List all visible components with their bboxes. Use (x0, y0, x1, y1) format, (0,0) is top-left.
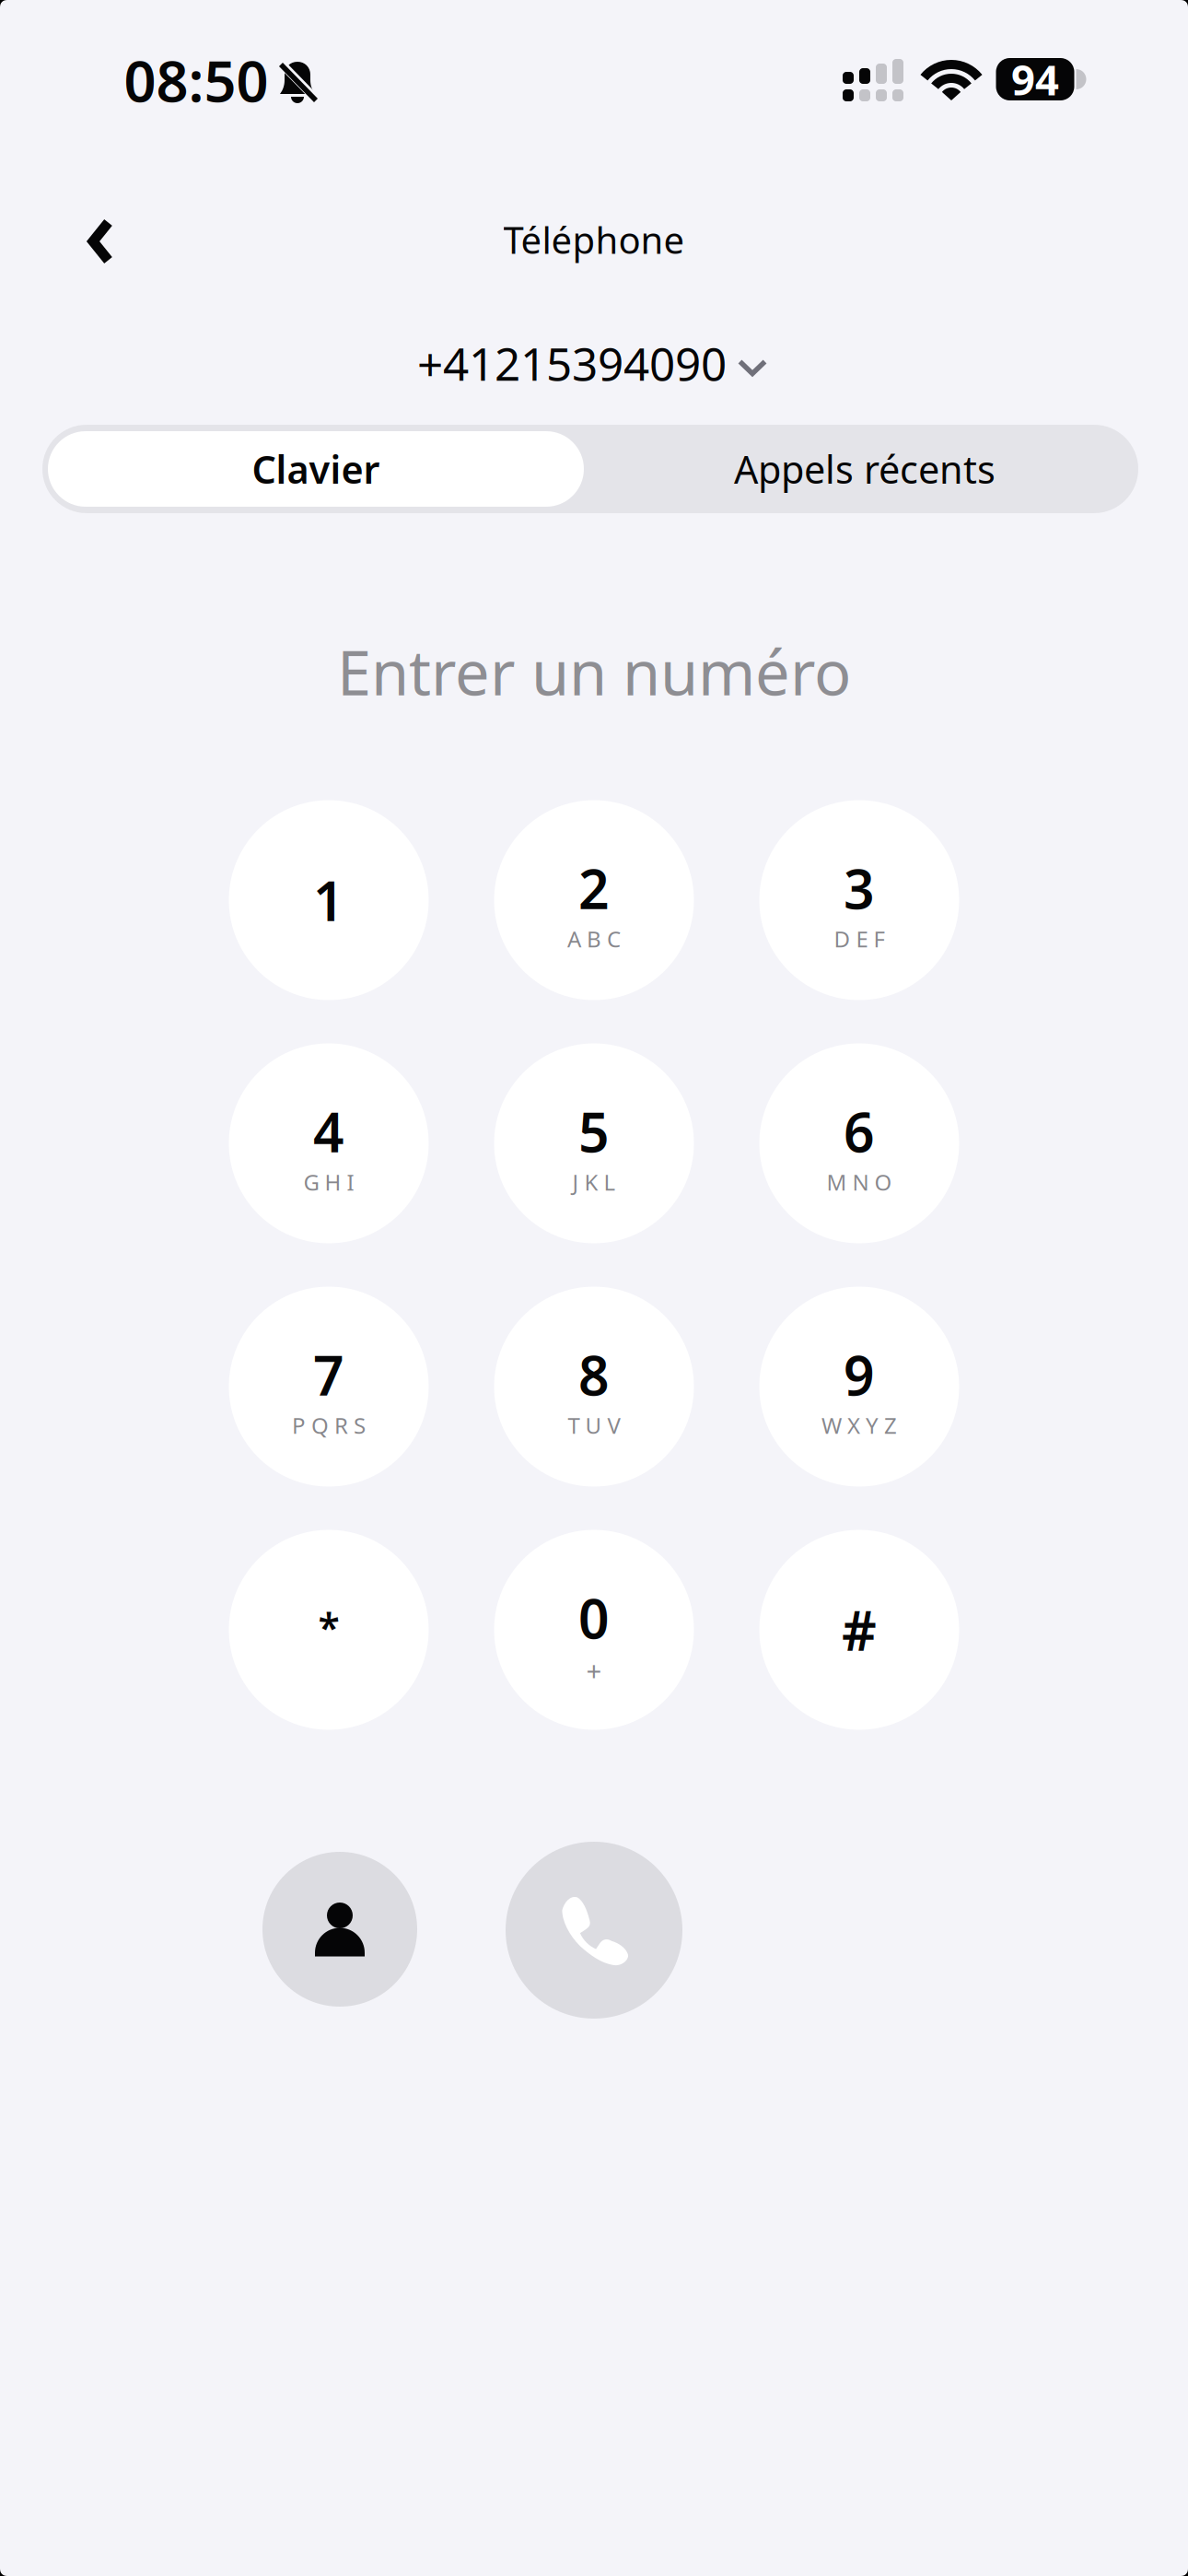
staticText: M N O (827, 1167, 892, 1197)
staticText: D E F (834, 924, 885, 954)
button[interactable]: Clavier (48, 431, 584, 507)
button[interactable]: 3 (759, 800, 959, 1000)
button[interactable]: Back (56, 197, 145, 286)
button[interactable]: # (759, 1530, 959, 1730)
button[interactable]: Contacts (262, 1852, 417, 2007)
button[interactable]: * (229, 1530, 429, 1730)
button[interactable]: 5 (494, 1043, 694, 1243)
staticText: 94 (1011, 52, 1059, 107)
staticText: 9 (844, 1339, 875, 1410)
staticText: 5 (578, 1095, 610, 1167)
staticText: Clavier (252, 444, 380, 494)
staticText: 8 (578, 1339, 610, 1410)
staticText: A B C (567, 924, 621, 954)
button[interactable]: 9 (759, 1287, 959, 1487)
staticText: 1 (313, 864, 344, 936)
staticText: +41215394090 (417, 333, 727, 393)
button[interactable]: 8 (494, 1287, 694, 1487)
button[interactable]: 6 (759, 1043, 959, 1243)
staticText: Entrer un numéro (337, 631, 851, 712)
staticText: 08:50 (124, 43, 268, 118)
staticText: 3 (844, 852, 875, 924)
button[interactable]: 1 (229, 800, 429, 1000)
button[interactable]: +41215394090 (399, 321, 786, 405)
staticText: Appels récents (734, 444, 996, 494)
staticText: G H I (303, 1167, 354, 1197)
staticText: W X Y Z (821, 1411, 897, 1440)
staticText: 4 (313, 1095, 344, 1167)
staticText: 7 (313, 1339, 344, 1410)
staticText: 0 (578, 1582, 610, 1654)
staticText: 6 (844, 1095, 875, 1167)
staticText: J K L (572, 1167, 616, 1197)
button[interactable]: 4 (229, 1043, 429, 1243)
staticText: * (318, 1601, 339, 1653)
button[interactable]: Call (506, 1842, 682, 2019)
staticText: 2 (578, 852, 610, 924)
staticText: Téléphone (503, 215, 685, 264)
staticText: + (586, 1652, 602, 1688)
staticText: T U V (568, 1411, 620, 1440)
button[interactable]: Appels récents (591, 431, 1138, 507)
staticText: P Q R S (292, 1411, 366, 1440)
button[interactable]: 2 (494, 800, 694, 1000)
button[interactable]: 7 (229, 1287, 429, 1487)
button[interactable]: 0 (494, 1530, 694, 1730)
staticText: # (842, 1594, 877, 1666)
